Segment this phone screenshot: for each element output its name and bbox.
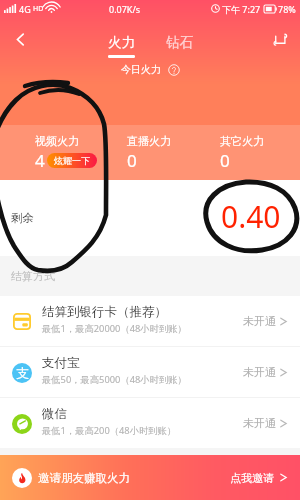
- button[interactable]: 支: [0, 347, 300, 397]
- button[interactable]: Back: [0, 19, 40, 59]
- staticText: 直播火力: [127, 134, 171, 148]
- staticText: HD: [33, 4, 44, 14]
- staticText: 点我邀请: [230, 471, 274, 485]
- staticText: 今日火力: [121, 63, 161, 76]
- staticText: 0: [127, 149, 137, 172]
- button[interactable]: 钻石: [158, 34, 201, 51]
- button[interactable]: 火力: [100, 34, 143, 58]
- button[interactable]: 炫耀一下: [47, 153, 97, 168]
- staticText: 其它火力: [220, 134, 264, 148]
- staticText: 最低1，最高20000（48小时到账）: [42, 322, 187, 335]
- staticText: 最低50，最高5000（48小时到账）: [42, 373, 187, 386]
- staticText: 钻石: [166, 34, 193, 51]
- button[interactable]: 直播火力: [103, 125, 196, 180]
- staticText: 火力: [108, 34, 135, 51]
- staticText: 最低1，最高200（48小时到账）: [42, 424, 177, 437]
- staticText: 支付宝: [42, 355, 80, 371]
- staticText: 炫耀一下: [54, 155, 90, 166]
- button[interactable]: 视频火力: [11, 125, 103, 180]
- button[interactable]: 其它火力: [196, 125, 289, 180]
- staticText: 邀请朋友赚取火力: [38, 471, 130, 485]
- button[interactable]: Records: [260, 19, 300, 59]
- staticText: 0: [220, 149, 230, 172]
- button[interactable]: 结算到银行卡（推荐）: [0, 296, 300, 346]
- staticText: 微信: [42, 406, 67, 422]
- staticText: 0.07K/s: [109, 3, 141, 15]
- staticText: 视频火力: [35, 134, 79, 148]
- staticText: 4: [35, 149, 45, 172]
- staticText: 4G: [19, 3, 31, 15]
- button[interactable]: 微信: [0, 398, 300, 448]
- staticText: 剩余: [11, 211, 34, 225]
- button[interactable]: 剩余: [0, 180, 300, 256]
- button[interactable]: 邀请朋友赚取火力: [0, 455, 300, 500]
- staticText: 支: [16, 365, 29, 381]
- staticText: 未开通: [243, 416, 276, 430]
- staticText: 结算方式: [11, 269, 55, 283]
- staticText: 未开通: [243, 365, 276, 379]
- button[interactable]: 今日火力: [0, 63, 300, 76]
- staticText: 下午 7:27: [222, 3, 261, 15]
- staticText: 0.40: [221, 196, 281, 237]
- staticText: 结算到银行卡（推荐）: [42, 304, 167, 320]
- staticText: 未开通: [243, 314, 276, 328]
- staticText: 78%: [278, 3, 296, 15]
